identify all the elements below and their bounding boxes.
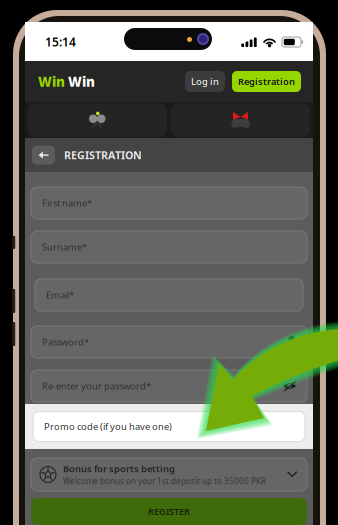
staticText: Password* [42,336,89,348]
staticText: Win [38,73,65,90]
staticText: Promo code (if you have one) [44,420,172,433]
staticText: 15:14 [45,34,76,50]
staticText: Bonus for sports betting [63,462,175,475]
button[interactable]: REGISTER [25,498,313,525]
staticText: Surname* [42,241,87,253]
staticText: Re-enter your password* [42,380,151,392]
staticText: Welcome bonus on your 1st deposit up to … [63,476,266,486]
staticText: Log in [191,75,219,88]
staticText: First name* [42,197,92,209]
button[interactable]: Promo code (if you have one) [25,411,313,441]
button[interactable]: Registration [232,71,301,92]
button[interactable]: Log in [185,71,225,92]
button[interactable]: Sports [28,103,167,136]
button[interactable]: Bonus for sports betting [25,458,313,491]
button[interactable]: Casino [171,103,310,136]
staticText: REGISTER [148,505,190,518]
button[interactable]: Back [32,145,55,164]
staticText: Registration [238,75,295,88]
staticText: Win [68,73,95,90]
staticText: REGISTRATION [64,148,142,162]
staticText: Email* [46,289,74,301]
